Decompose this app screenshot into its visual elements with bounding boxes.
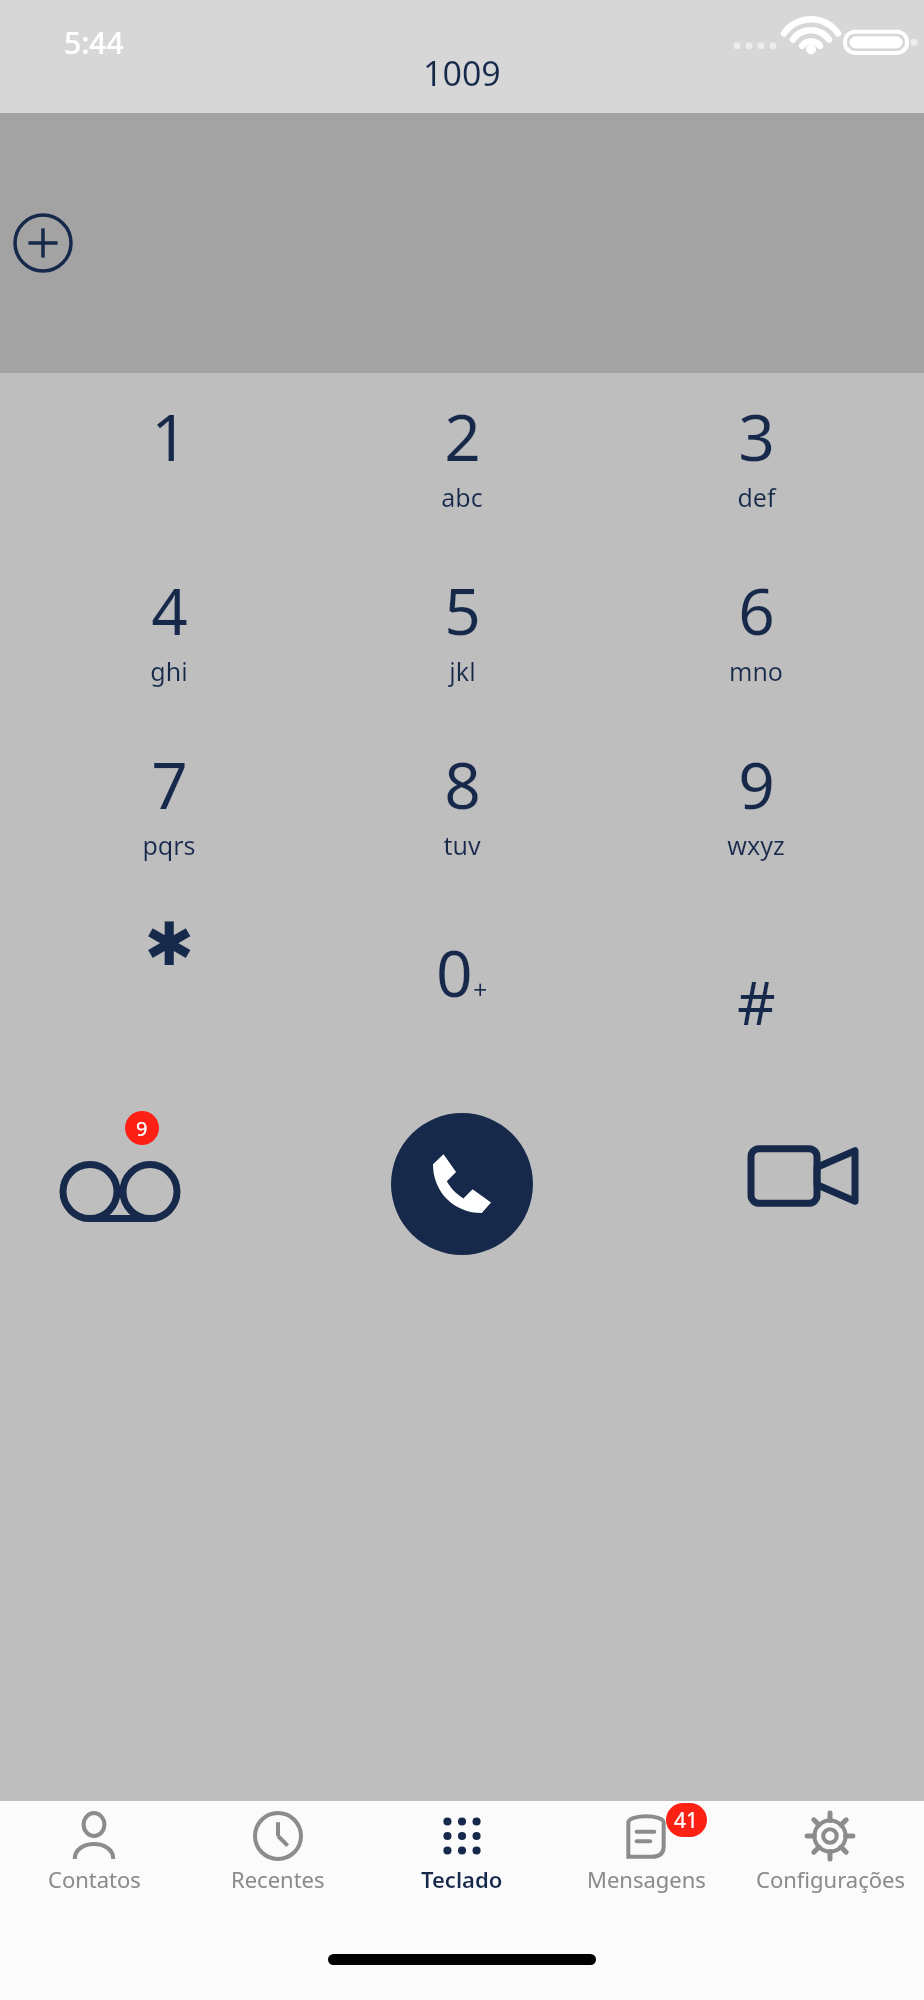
button[interactable]: 3 xyxy=(631,385,881,559)
staticText: 1009 xyxy=(423,50,501,96)
button[interactable]: 1 xyxy=(44,385,294,559)
button[interactable]: Chamada de video xyxy=(729,1111,879,1241)
button[interactable]: 4 xyxy=(44,559,294,733)
staticText: Teclado xyxy=(421,1864,503,1894)
button[interactable]: ✱ xyxy=(44,907,294,1081)
staticText: 6 xyxy=(738,567,775,654)
button[interactable]: 9 xyxy=(631,733,881,907)
button[interactable]: Correio de voz xyxy=(45,1111,195,1241)
button[interactable]: Configurações xyxy=(740,1808,920,1894)
staticText: 5:44 xyxy=(64,22,124,63)
button[interactable]: Contatos xyxy=(4,1808,184,1894)
button[interactable]: Teclado xyxy=(372,1808,552,1894)
staticText: Configurações xyxy=(756,1864,905,1894)
staticText: abc xyxy=(441,480,483,514)
button[interactable]: 41 xyxy=(556,1808,736,1894)
staticText: + xyxy=(473,972,488,1006)
staticText: Mensagens xyxy=(587,1864,706,1894)
staticText: # xyxy=(737,961,776,1043)
button[interactable]: Adicionar contato xyxy=(13,213,73,273)
staticText: 3 xyxy=(738,393,775,480)
staticText: ✱ xyxy=(144,909,195,979)
staticText: 9 xyxy=(738,741,775,828)
button[interactable]: Recentes xyxy=(188,1808,368,1894)
staticText: wxyz xyxy=(727,828,785,862)
button[interactable]: 7 xyxy=(44,733,294,907)
staticText: 1 xyxy=(151,393,188,480)
button[interactable]: 8 xyxy=(337,733,587,907)
staticText: 7 xyxy=(151,741,188,828)
staticText: 9 xyxy=(136,1115,148,1142)
button[interactable]: 6 xyxy=(631,559,881,733)
staticText: jkl xyxy=(449,654,476,688)
staticText: mno xyxy=(729,654,783,688)
button[interactable]: 5 xyxy=(337,559,587,733)
staticText: pqrs xyxy=(142,828,196,862)
staticText: 0 xyxy=(436,929,473,1016)
button[interactable]: Ligar xyxy=(391,1113,533,1255)
staticText: Contatos xyxy=(48,1864,141,1894)
staticText: Recentes xyxy=(231,1864,325,1894)
staticText: def xyxy=(737,480,776,514)
button[interactable]: # xyxy=(631,907,881,1081)
staticText: 4 xyxy=(151,567,188,654)
button[interactable]: 0 xyxy=(337,907,587,1081)
staticText: 8 xyxy=(444,741,481,828)
staticText: 41 xyxy=(674,1806,699,1835)
staticText: 5 xyxy=(444,567,481,654)
staticText: 2 xyxy=(444,393,481,480)
staticText: tuv xyxy=(443,828,481,862)
button[interactable]: 2 xyxy=(337,385,587,559)
staticText: ghi xyxy=(150,654,188,688)
